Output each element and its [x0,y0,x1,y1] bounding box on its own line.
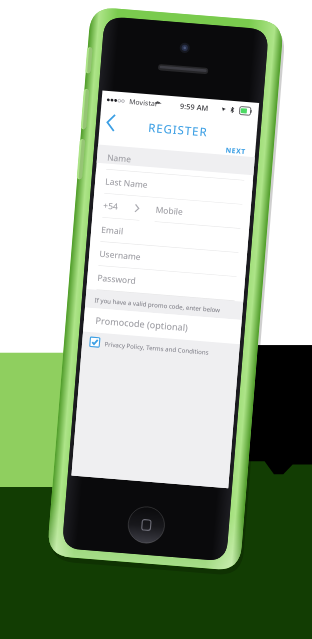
button[interactable]: Register form shown on a green iPhone [0,0,312,639]
